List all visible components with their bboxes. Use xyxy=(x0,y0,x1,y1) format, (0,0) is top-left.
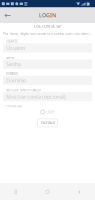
staticText: Senha xyxy=(6,61,21,68)
button[interactable]: Back xyxy=(0,7,16,23)
button[interactable]: Home xyxy=(32,183,63,200)
staticText: SERVIDOR SONS (PRIVADO) xyxy=(6,88,41,92)
staticText: SENHA xyxy=(6,56,14,59)
staticText: Por favor, digite seu usuário e senha co… xyxy=(3,31,92,36)
staticText: PROTOCOLO xyxy=(6,104,22,108)
staticText: Usuário xyxy=(6,44,25,51)
button[interactable]: Domínio xyxy=(3,76,92,85)
staticText: Mostrar conta (opcional) xyxy=(6,93,66,100)
staticText: ENTRAR xyxy=(40,120,54,126)
button[interactable]: UDP xyxy=(3,109,92,115)
staticText: USUÁRIO xyxy=(6,40,18,43)
staticText: DOMÍNIO xyxy=(6,72,18,76)
staticText: ← xyxy=(4,11,11,20)
button[interactable]: Mostrar conta (opcional) xyxy=(3,92,92,101)
button[interactable]: Senha xyxy=(3,59,92,69)
staticText: Domínio xyxy=(6,77,26,84)
button[interactable]: ENTRAR xyxy=(37,119,57,127)
staticText: UDP xyxy=(46,109,54,115)
staticText: ‹ xyxy=(78,187,80,196)
button[interactable]: Usuário xyxy=(3,43,92,53)
staticText: USE CONTA SIP xyxy=(34,23,61,29)
staticText: LOGIN xyxy=(39,12,56,19)
staticText: ▯ xyxy=(14,188,17,195)
staticText: ○ xyxy=(45,188,50,195)
